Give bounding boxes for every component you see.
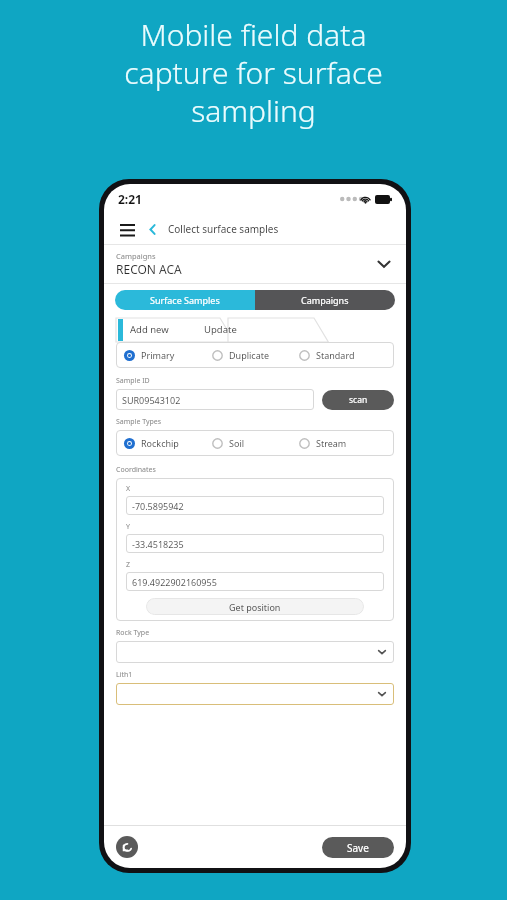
staticText: Sample Types [116, 417, 162, 427]
staticText: RECON ACA [116, 261, 182, 277]
button[interactable]: scan [322, 390, 394, 410]
staticText: Campaigns [301, 294, 349, 306]
staticText: Duplicate [229, 349, 270, 361]
staticText: Add new [130, 323, 169, 336]
button[interactable]: Back [144, 221, 160, 237]
staticText: Lith1 [116, 670, 133, 680]
staticText: 2:21 [118, 191, 142, 207]
staticText: Update [204, 323, 237, 336]
staticText: Collect surface samples [168, 222, 279, 236]
staticText: Mobile field data capture for surface sa… [124, 14, 383, 131]
staticText: Standard [316, 349, 355, 361]
button[interactable]: Campaigns [104, 245, 406, 283]
staticText: Primary [141, 349, 175, 361]
staticText: -33.4518235 [132, 538, 184, 550]
button[interactable]: Stream [299, 437, 386, 449]
staticText: scan [349, 394, 368, 406]
button[interactable]: Soil [212, 437, 299, 449]
staticText: Stream [316, 437, 347, 449]
staticText: Get position [229, 601, 281, 613]
button[interactable]: Menu [117, 219, 137, 239]
button[interactable]: Save [322, 837, 394, 858]
button[interactable]: Rockchip [124, 437, 212, 449]
button[interactable]: Update [204, 316, 264, 342]
button[interactable]: SUR09543102 [116, 389, 314, 410]
button[interactable]: Campaigns [255, 290, 395, 310]
button[interactable]: -33.4518235 [126, 534, 384, 553]
staticText: Z [126, 560, 131, 570]
button[interactable]: Undo [116, 836, 138, 858]
staticText: Campaigns [116, 251, 156, 261]
button[interactable]: Primary [124, 349, 212, 361]
staticText: Y [126, 522, 130, 532]
button[interactable]: Duplicate [212, 349, 299, 361]
button[interactable]: Get position [146, 598, 364, 615]
button[interactable]: Surface Samples [115, 290, 255, 310]
staticText: 619.4922902160955 [132, 576, 217, 588]
button[interactable]: Add new [130, 316, 190, 342]
staticText: Sample ID [116, 376, 150, 386]
staticText: SUR09543102 [122, 394, 181, 406]
staticText: Soil [229, 437, 245, 449]
staticText: Save [347, 841, 369, 855]
button[interactable] [116, 641, 394, 663]
button[interactable]: 619.4922902160955 [126, 572, 384, 591]
staticText: Rock Type [116, 628, 150, 638]
staticText: -70.5895942 [132, 500, 184, 512]
button[interactable]: Standard [299, 349, 386, 361]
staticText: Surface Samples [150, 294, 220, 306]
staticText: X [126, 484, 131, 494]
button[interactable] [116, 683, 394, 705]
button[interactable]: -70.5895942 [126, 496, 384, 515]
staticText: Coordinates [116, 465, 156, 475]
staticText: Rockchip [141, 437, 179, 449]
